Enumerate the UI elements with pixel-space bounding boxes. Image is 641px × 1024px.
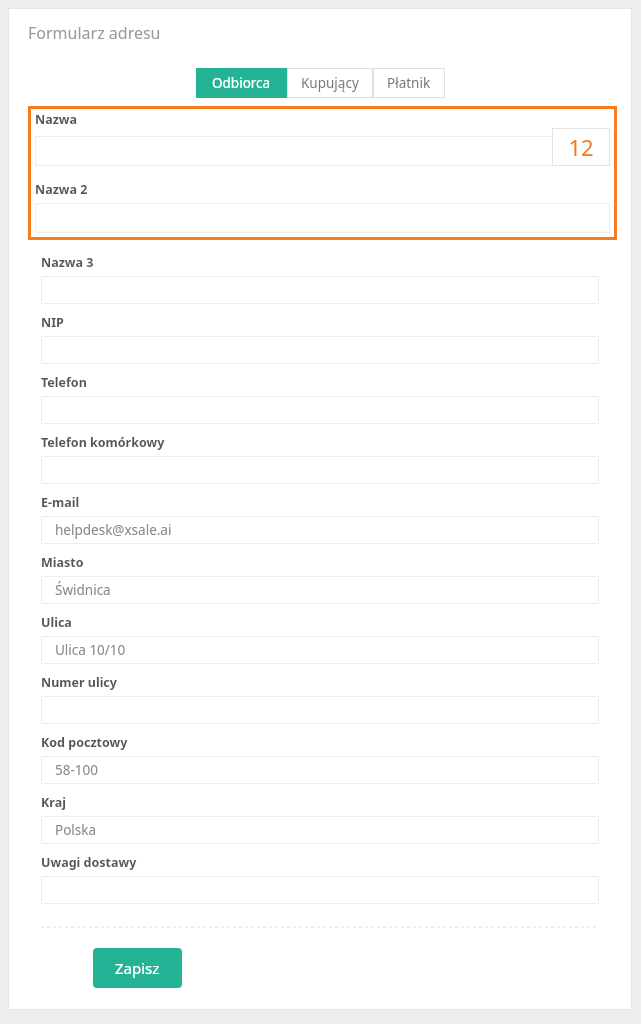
staticText: Formularz adresu <box>28 22 161 44</box>
staticText: Płatnik <box>387 74 431 92</box>
staticText: Numer ulicy <box>41 674 117 691</box>
button[interactable]: 58-100 <box>41 756 599 784</box>
staticText: Świdnica <box>55 581 111 599</box>
button[interactable] <box>41 276 599 304</box>
staticText: Kupujący <box>301 74 359 92</box>
button[interactable] <box>35 203 610 233</box>
staticText: Nazwa 3 <box>41 254 94 271</box>
staticText: Polska <box>55 821 97 839</box>
button[interactable]: Odbiorca <box>196 68 287 98</box>
staticText: Zapisz <box>115 958 160 978</box>
staticText: E-mail <box>41 494 80 511</box>
staticText: NIP <box>41 314 64 331</box>
staticText: Odbiorca <box>212 74 271 92</box>
button[interactable] <box>41 336 599 364</box>
button[interactable]: Polska <box>41 816 599 844</box>
staticText: Kraj <box>41 794 66 811</box>
button[interactable]: Kupujący <box>287 68 373 98</box>
button[interactable] <box>41 456 599 484</box>
button[interactable]: Płatnik <box>373 68 445 98</box>
button[interactable] <box>41 696 599 724</box>
button[interactable]: helpdesk@xsale.ai <box>41 516 599 544</box>
staticText: Nazwa 2 <box>35 181 88 198</box>
staticText: Ulica 10/10 <box>55 641 126 659</box>
button[interactable]: Zapisz <box>93 948 182 988</box>
staticText: Telefon <box>41 374 87 391</box>
button[interactable] <box>35 136 610 166</box>
staticText: Telefon komórkowy <box>41 434 165 451</box>
button[interactable] <box>41 396 599 424</box>
staticText: Kod pocztowy <box>41 734 128 751</box>
staticText: Uwagi dostawy <box>41 854 137 871</box>
button[interactable] <box>41 876 599 904</box>
staticText: 58-100 <box>55 761 98 779</box>
staticText: Ulica <box>41 614 72 631</box>
staticText: helpdesk@xsale.ai <box>55 521 172 539</box>
staticText: 12 <box>568 132 594 162</box>
staticText: Miasto <box>41 554 84 571</box>
staticText: Nazwa <box>35 111 78 128</box>
button[interactable]: Świdnica <box>41 576 599 604</box>
button[interactable]: Ulica 10/10 <box>41 636 599 664</box>
